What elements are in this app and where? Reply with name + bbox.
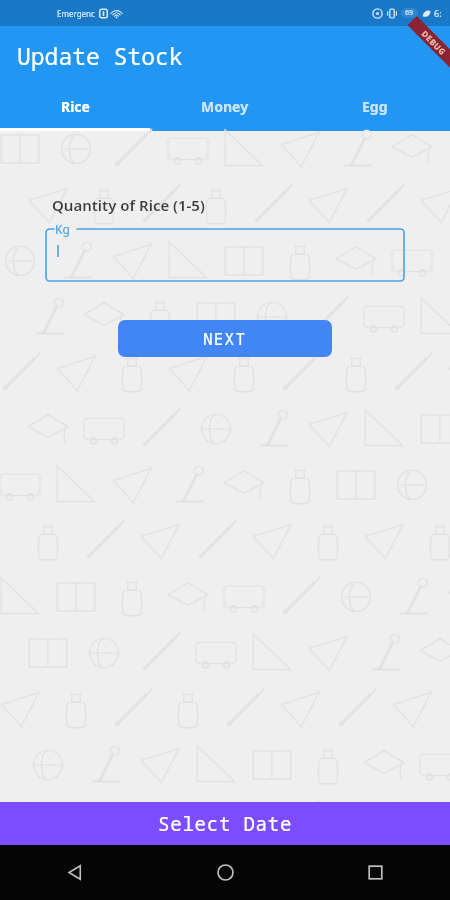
staticText: Rice: [61, 97, 90, 116]
staticText: DEBUG: [419, 28, 448, 57]
button[interactable]: Select Date: [0, 802, 450, 845]
staticText: Select Date: [158, 811, 293, 837]
button[interactable]: Back: [0, 845, 150, 900]
staticText: Quantity of Rice (1-5): [52, 195, 205, 215]
button[interactable]: NEXT: [118, 320, 332, 357]
button[interactable]: Kg: [46, 221, 404, 281]
staticText: Emergenc: [57, 8, 95, 19]
staticText: Update Stock: [17, 40, 183, 71]
staticText: NEXT: [203, 328, 247, 350]
button[interactable]: Home: [150, 845, 300, 900]
button[interactable]: Money: [150, 84, 300, 128]
button[interactable]: Rice: [0, 84, 150, 128]
button[interactable]: Egg: [300, 84, 450, 128]
staticText: Egg: [362, 97, 388, 116]
button[interactable]: Recent apps: [300, 845, 450, 900]
staticText: Kg: [55, 221, 70, 237]
staticText: Money: [201, 97, 249, 116]
staticText: 69: [405, 8, 414, 18]
staticText: 6:: [434, 7, 442, 19]
